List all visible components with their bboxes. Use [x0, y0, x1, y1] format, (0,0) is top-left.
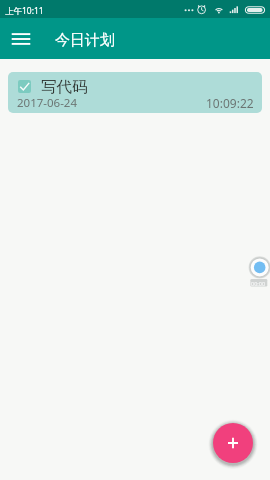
staticText: 10:09:22: [206, 95, 254, 111]
button[interactable]: Open navigation menu: [5, 23, 37, 55]
staticText: 今日计划: [55, 31, 115, 50]
button[interactable]: Mark task as done: [8, 72, 262, 113]
staticText: 上午10:11: [5, 5, 44, 17]
staticText: 写代码: [41, 77, 88, 97]
button[interactable]: Floating assistant timer: [249, 257, 269, 288]
button[interactable]: Mark task as done: [18, 80, 31, 93]
staticText: 2017-06-24: [17, 95, 78, 111]
button[interactable]: Add new task: [213, 423, 253, 463]
staticText: 00:00: [251, 280, 266, 287]
